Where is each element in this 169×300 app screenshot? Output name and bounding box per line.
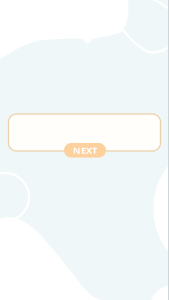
staticText: NEXT (73, 144, 97, 156)
button[interactable]: Answer field (8, 114, 160, 151)
button[interactable]: NEXT (64, 143, 106, 157)
